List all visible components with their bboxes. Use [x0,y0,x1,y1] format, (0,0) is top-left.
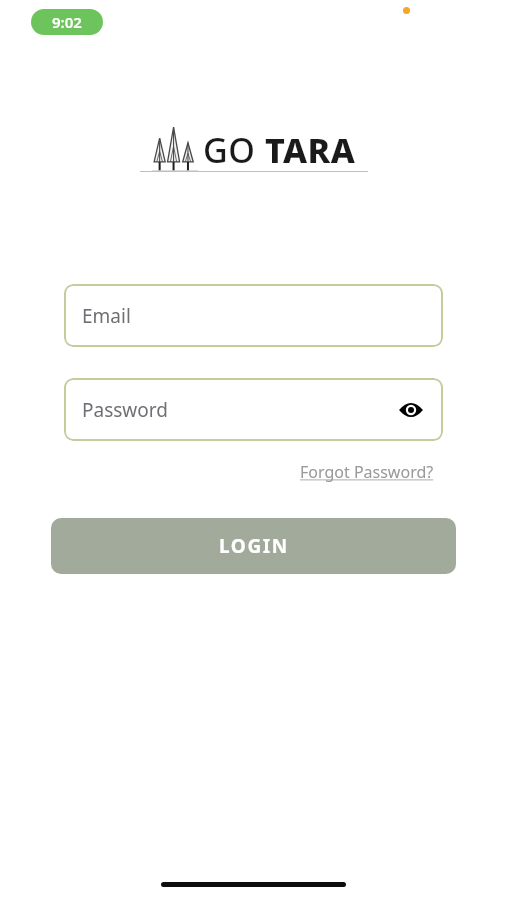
button[interactable]: Password [64,378,443,441]
button[interactable]: Forgot Password? [296,458,438,486]
staticText: GO [203,127,256,173]
staticText: Forgot Password? [300,461,434,483]
staticText: Password [82,397,168,423]
button[interactable]: LOGIN [51,518,456,574]
staticText: LOGIN [219,533,289,559]
button[interactable]: Show password [391,390,431,430]
staticText: 9:02 [52,12,82,32]
staticText: Email [82,303,131,329]
button[interactable]: Email [64,284,443,347]
staticText: TARA [265,127,356,173]
